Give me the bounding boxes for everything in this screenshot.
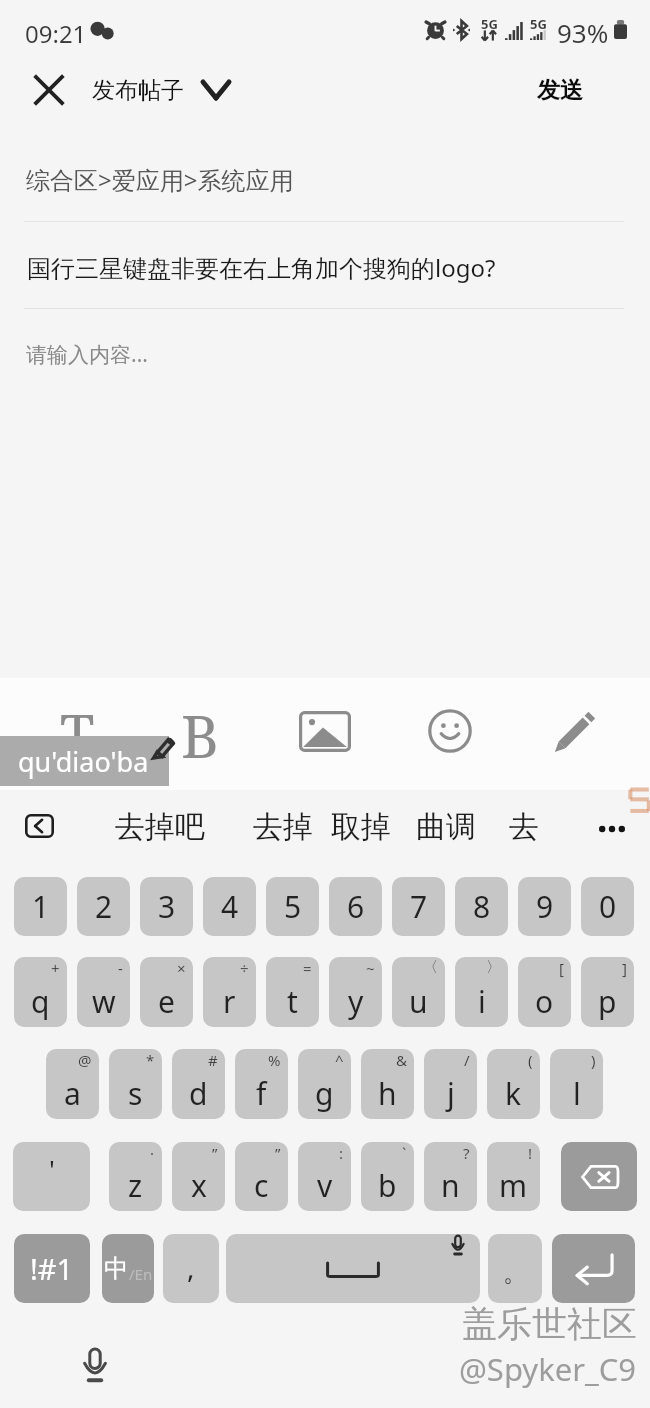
button[interactable]: 5 xyxy=(266,877,319,936)
staticText: 发布帖子 xyxy=(92,76,184,105)
staticText: w xyxy=(92,981,116,1022)
staticText: 9 xyxy=(536,886,554,927)
staticText: & xyxy=(396,1050,407,1070)
button[interactable]: 4 xyxy=(203,877,256,936)
button[interactable]: 曲调 xyxy=(416,808,476,846)
button[interactable]: 2 xyxy=(77,877,130,936)
staticText: s xyxy=(128,1073,143,1114)
staticText: e xyxy=(158,981,175,1022)
button[interactable]: m xyxy=(487,1142,540,1211)
button[interactable]: Text style xyxy=(44,698,110,764)
staticText: T xyxy=(60,696,95,762)
staticText: 09:21 xyxy=(25,17,87,50)
button[interactable]: 0 xyxy=(581,877,634,936)
button[interactable]: 8 xyxy=(455,877,508,936)
button[interactable]: u xyxy=(392,957,445,1027)
staticText: B xyxy=(181,696,219,762)
staticText: · xyxy=(150,1143,155,1163)
button[interactable]: o xyxy=(518,957,571,1027)
button[interactable]: 1 xyxy=(14,877,67,936)
button[interactable]: 7 xyxy=(392,877,445,936)
staticText: k xyxy=(505,1073,522,1114)
button[interactable]: 3 xyxy=(140,877,193,936)
button[interactable]: !#1 xyxy=(14,1234,90,1303)
button[interactable]: y xyxy=(329,957,382,1027)
button[interactable]: Emoji xyxy=(417,698,483,764)
staticText: u xyxy=(409,981,428,1022)
button[interactable]: v xyxy=(298,1142,351,1211)
staticText: 中 xyxy=(104,1253,129,1284)
button[interactable]: More xyxy=(589,803,634,848)
button[interactable]: e xyxy=(140,957,193,1027)
staticText: 5G xyxy=(530,15,547,33)
staticText: 4 xyxy=(221,886,239,927)
staticText: ! xyxy=(528,1143,533,1163)
staticText: 国行三星键盘非要在右上角加个搜狗的logo? xyxy=(27,251,496,284)
staticText: 5G xyxy=(481,15,498,33)
staticText: 请输入内容... xyxy=(26,340,148,369)
button[interactable]: 综合区>爱应用>系统应用 xyxy=(26,163,294,196)
button[interactable]: d xyxy=(172,1049,225,1119)
staticText: c xyxy=(254,1165,269,1206)
staticText: × xyxy=(177,958,186,978)
button[interactable]: f xyxy=(235,1049,288,1119)
staticText: ( xyxy=(528,1050,533,1070)
button[interactable]: 发送 xyxy=(518,66,602,114)
button[interactable]: q xyxy=(14,957,67,1027)
button[interactable]: l xyxy=(550,1049,603,1119)
staticText: r xyxy=(223,981,236,1022)
button[interactable]: 取掉 xyxy=(331,808,391,846)
staticText: ) xyxy=(591,1050,596,1070)
button[interactable]: c xyxy=(235,1142,288,1211)
button[interactable]: , xyxy=(163,1234,219,1303)
button[interactable]: k xyxy=(487,1049,540,1119)
button[interactable]: 6 xyxy=(329,877,382,936)
staticText: !#1 xyxy=(30,1249,74,1288)
button[interactable]: r xyxy=(203,957,256,1027)
button[interactable]: n xyxy=(424,1142,477,1211)
staticText: , xyxy=(187,1248,195,1286)
button[interactable]: z xyxy=(109,1142,162,1211)
button[interactable]: Voice input xyxy=(70,1340,120,1390)
button[interactable]: Close xyxy=(24,65,74,115)
button[interactable]: a xyxy=(46,1049,99,1119)
button[interactable]: Insert image xyxy=(292,698,358,764)
button[interactable]: Space xyxy=(226,1234,480,1303)
button[interactable]: ' xyxy=(13,1142,90,1211)
button[interactable]: h xyxy=(361,1049,414,1119)
button[interactable]: 9 xyxy=(518,877,571,936)
staticText: 5 xyxy=(284,886,302,927)
staticText: i xyxy=(478,981,486,1022)
staticText: n xyxy=(441,1165,460,1206)
staticText: g xyxy=(315,1073,334,1114)
button[interactable]: 发布帖子 xyxy=(92,66,232,114)
button[interactable]: 去 xyxy=(509,808,539,846)
staticText: [ xyxy=(559,958,564,978)
button[interactable]: 。 xyxy=(488,1234,542,1303)
staticText: 2 xyxy=(95,886,113,927)
button[interactable]: Switch language xyxy=(102,1234,154,1303)
button[interactable]: 去掉吧 xyxy=(115,808,205,846)
button[interactable]: x xyxy=(172,1142,225,1211)
button[interactable]: w xyxy=(77,957,130,1027)
button[interactable]: 去掉 xyxy=(253,808,313,846)
button[interactable]: s xyxy=(109,1049,162,1119)
button[interactable]: Draw xyxy=(542,698,608,764)
staticText: f xyxy=(256,1073,267,1114)
staticText: ? xyxy=(463,1143,470,1163)
button[interactable]: Back xyxy=(25,814,54,838)
staticText: d xyxy=(189,1073,208,1114)
button[interactable]: Backspace xyxy=(561,1142,637,1211)
button[interactable]: Enter xyxy=(552,1234,635,1303)
staticText: * xyxy=(146,1050,155,1070)
button[interactable]: b xyxy=(361,1142,414,1211)
staticText: v xyxy=(317,1165,333,1206)
button[interactable]: Bold xyxy=(167,698,233,764)
button[interactable]: i xyxy=(455,957,508,1027)
button[interactable]: j xyxy=(424,1049,477,1119)
staticText: 1 xyxy=(32,886,50,927)
button[interactable]: t xyxy=(266,957,319,1027)
staticText: o xyxy=(535,981,554,1022)
button[interactable]: g xyxy=(298,1049,351,1119)
button[interactable]: p xyxy=(581,957,634,1027)
